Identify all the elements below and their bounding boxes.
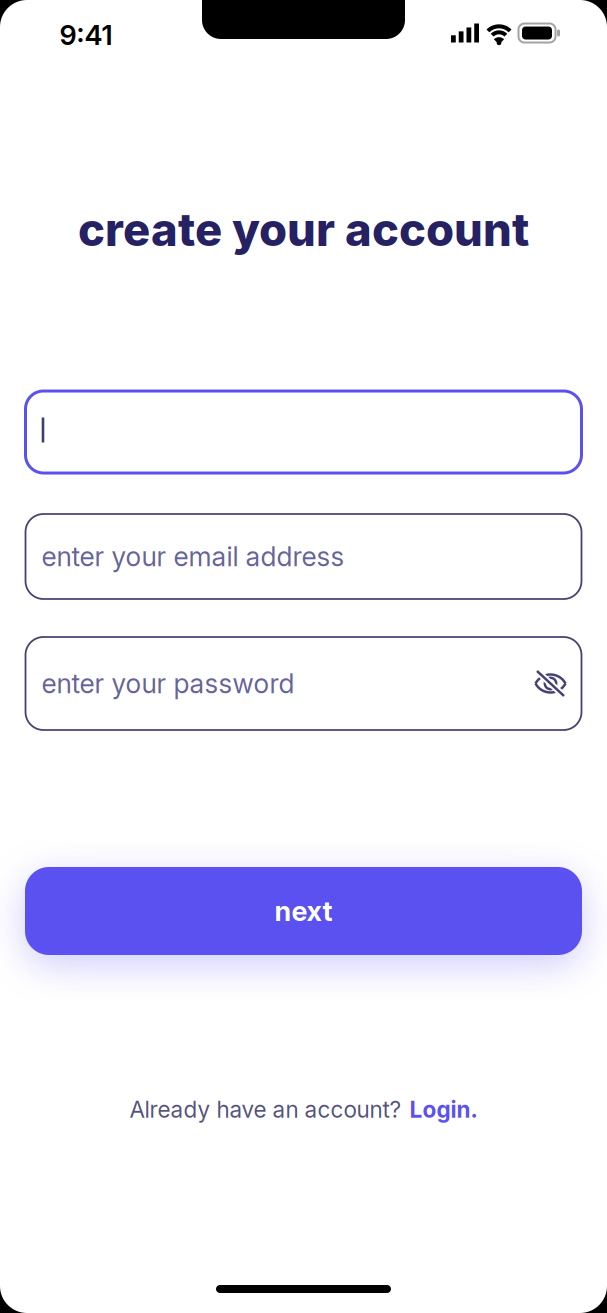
button[interactable] — [25, 391, 581, 473]
staticText: 9:41 — [59, 18, 112, 52]
staticText: enter your password — [41, 667, 294, 700]
button[interactable]: Already have an account? — [129, 1096, 477, 1123]
button[interactable]: next — [25, 867, 582, 955]
staticText: Already have an account? — [129, 1096, 401, 1123]
staticText: enter your email address — [41, 540, 344, 573]
button[interactable]: enter your email address — [25, 514, 581, 599]
staticText: next — [274, 894, 332, 928]
button[interactable]: enter your password — [25, 637, 581, 730]
staticText: Login. — [409, 1096, 477, 1123]
staticText: create your account — [78, 202, 529, 257]
